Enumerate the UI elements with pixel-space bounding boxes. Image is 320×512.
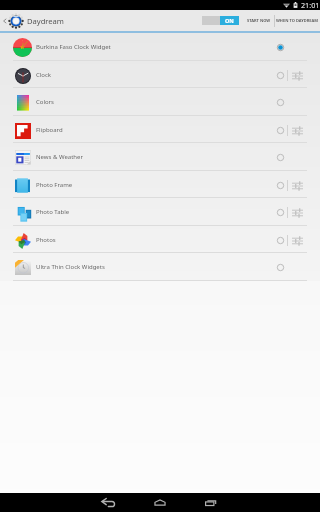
button[interactable]: Settings for Photos (290, 234, 305, 247)
staticText: News & Weather (36, 153, 83, 161)
button[interactable]: Photo Table (0, 198, 320, 226)
button[interactable]: Photo Frame (0, 171, 320, 199)
button[interactable]: Select Photo Table (271, 203, 290, 222)
button[interactable]: Ultra Thin Clock Widgets (0, 253, 320, 281)
button[interactable]: Select Photo Frame (271, 176, 290, 195)
button[interactable]: Settings for Flipboard (290, 124, 305, 137)
staticText: Clock (36, 71, 52, 79)
button[interactable]: Burkina Faso Clock Widget (0, 33, 320, 61)
staticText: Ultra Thin Clock Widgets (36, 263, 105, 271)
button[interactable]: Select News & Weather (271, 148, 290, 167)
button[interactable]: Settings for Photo Frame (290, 179, 305, 192)
button[interactable]: Settings for Clock (290, 69, 305, 82)
staticText: Flipboard (36, 126, 63, 134)
staticText: START NOW (247, 18, 271, 23)
button[interactable]: News & Weather (0, 143, 320, 171)
button[interactable]: Navigate up (0, 10, 67, 31)
staticText: Photo Frame (36, 181, 73, 189)
button[interactable]: Colors (0, 88, 320, 116)
button[interactable]: WHEN TO DAYDREAM (275, 10, 320, 31)
staticText: Photo Table (36, 208, 70, 216)
button[interactable]: Select Flipboard (271, 121, 290, 140)
button[interactable]: Flipboard (0, 116, 320, 144)
button[interactable]: Home (151, 494, 169, 512)
button[interactable]: ON (202, 10, 239, 31)
button[interactable]: Back (99, 494, 117, 512)
staticText: WHEN TO DAYDREAM (276, 18, 319, 23)
button[interactable]: Settings for Photo Table (290, 206, 305, 219)
button[interactable]: START NOW (243, 10, 274, 31)
button[interactable]: Recent apps (202, 494, 220, 512)
button[interactable]: Clock (0, 61, 320, 89)
button[interactable]: Select Photos (271, 231, 290, 250)
staticText: 21:01 (301, 0, 320, 10)
button[interactable]: Select Colors (271, 93, 290, 112)
button[interactable]: Select Clock (271, 66, 290, 85)
staticText: Daydream (27, 16, 64, 26)
button[interactable]: Select Burkina Faso Clock Widget (271, 38, 290, 57)
button[interactable]: Select Ultra Thin Clock Widgets (271, 258, 290, 277)
staticText: Photos (36, 236, 56, 244)
staticText: Colors (36, 98, 54, 106)
staticText: Burkina Faso Clock Widget (36, 43, 111, 51)
staticText: ON (225, 17, 234, 24)
other: Navigate up (2, 16, 7, 26)
button[interactable]: Photos (0, 226, 320, 254)
